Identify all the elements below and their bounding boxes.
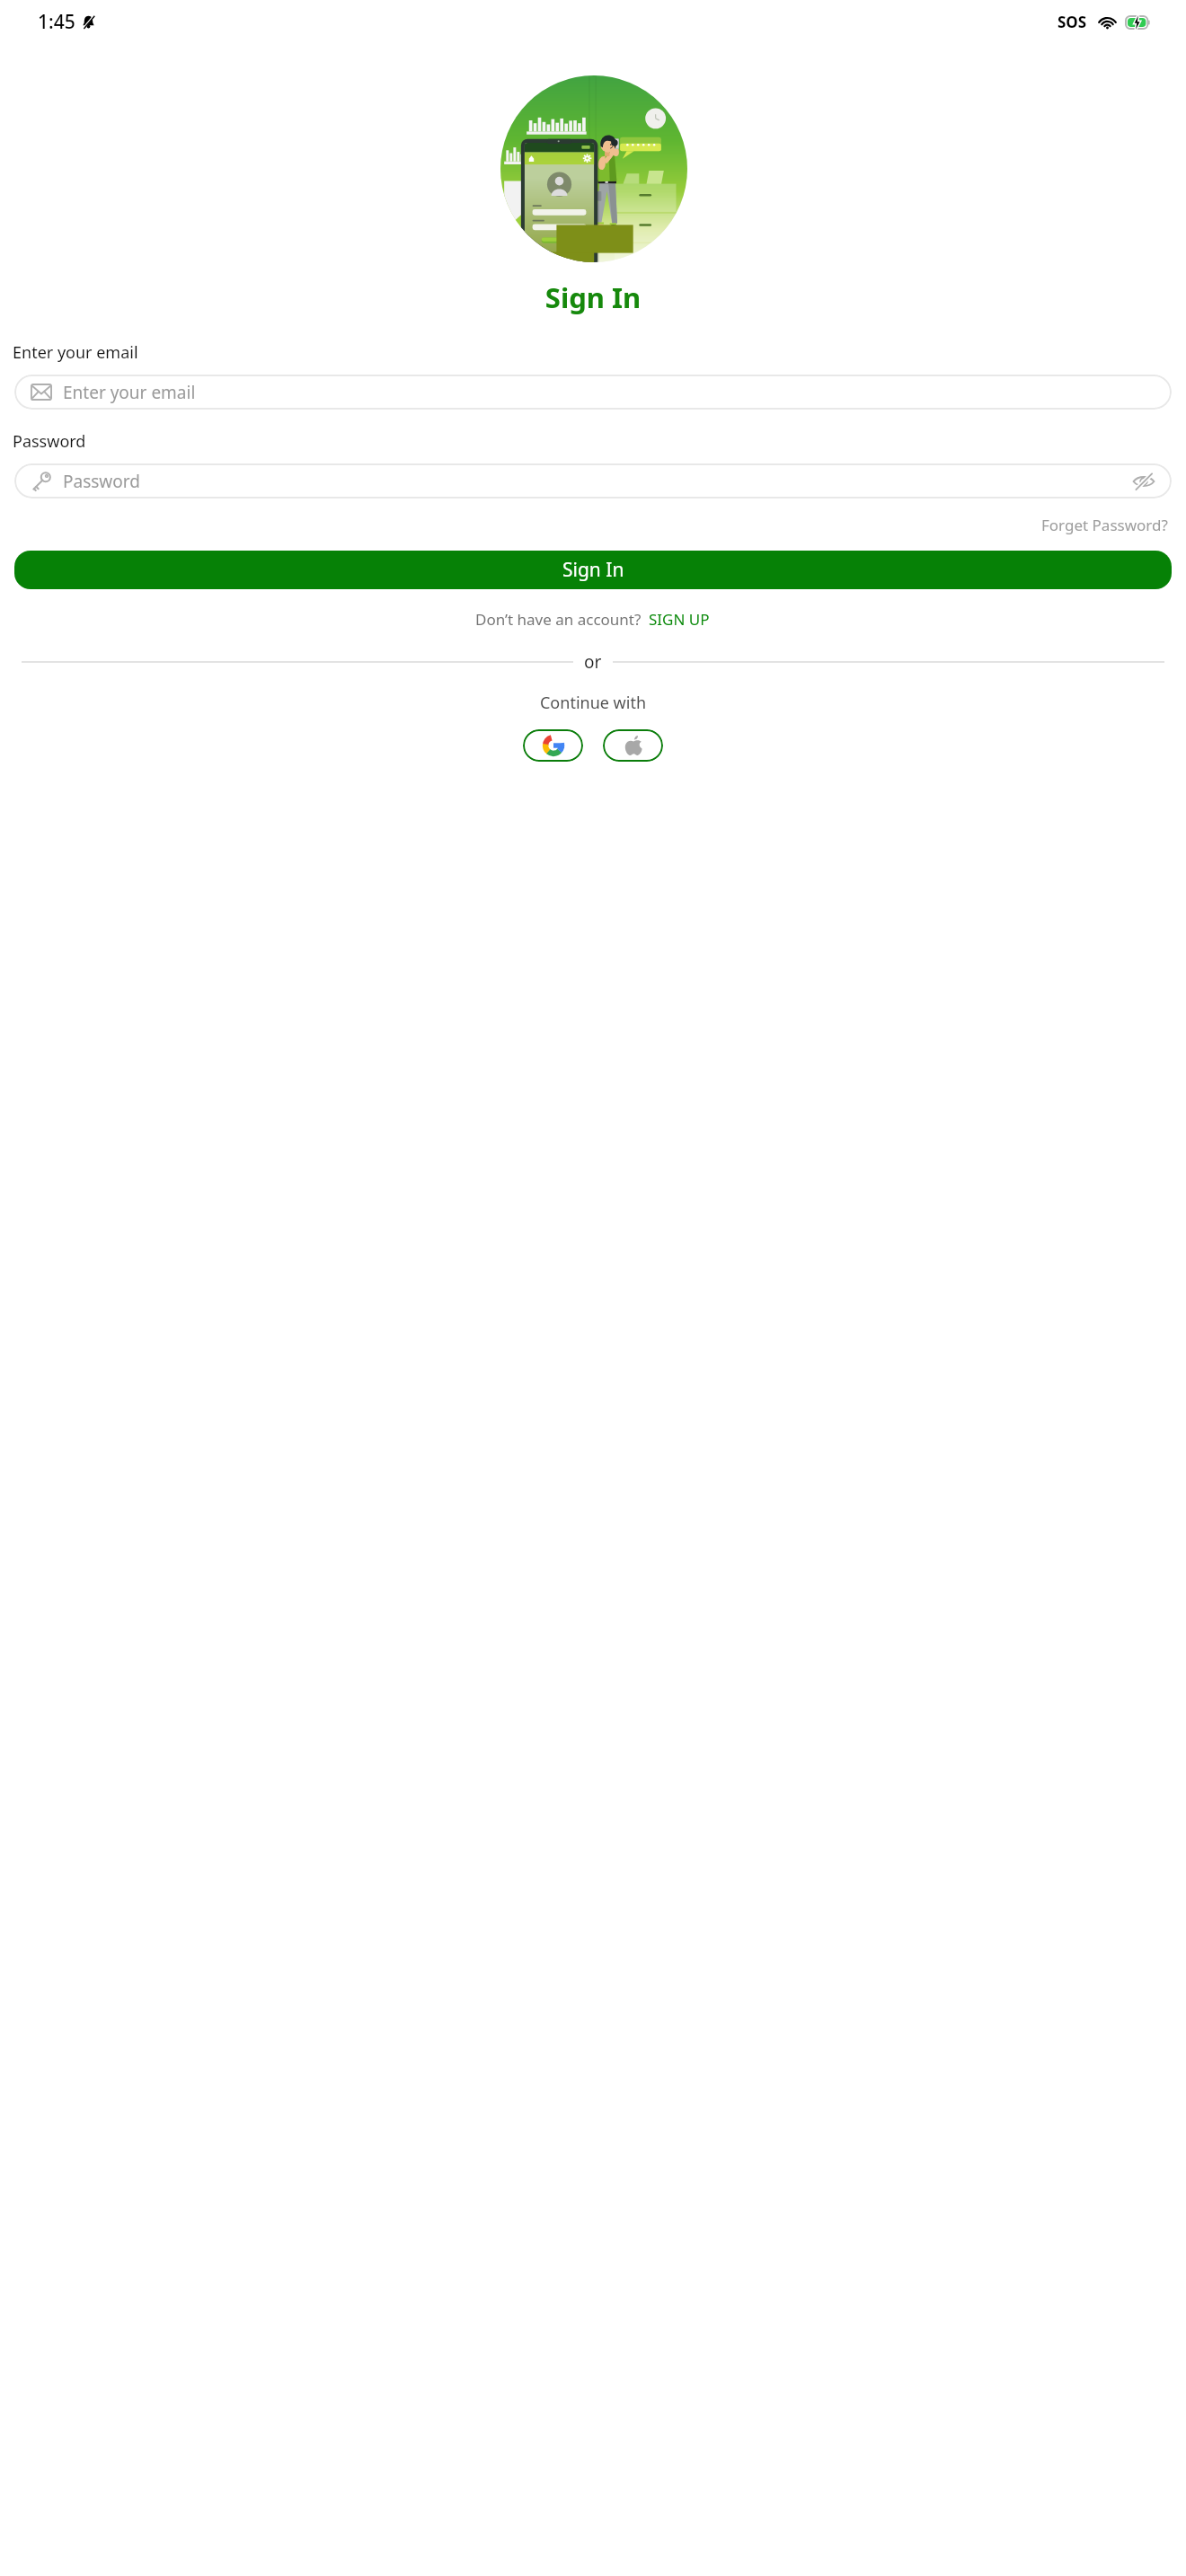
button[interactable]: Continue with Apple bbox=[603, 729, 663, 762]
staticText: SIGN UP bbox=[649, 609, 710, 630]
staticText: 1:45 bbox=[38, 9, 75, 35]
staticText: Continue with bbox=[0, 692, 1186, 714]
button[interactable]: Show password bbox=[1130, 468, 1157, 495]
staticText: Forget Password? bbox=[1041, 515, 1168, 535]
staticText: Password bbox=[63, 470, 1130, 493]
button[interactable]: Forget Password? bbox=[1038, 511, 1172, 539]
staticText: Sign In bbox=[562, 557, 624, 583]
staticText: Enter your email bbox=[13, 341, 138, 364]
button[interactable]: Password bbox=[14, 463, 1172, 498]
staticText: Don’t have an account? bbox=[475, 609, 642, 630]
staticText: Sign In bbox=[0, 278, 1186, 316]
button[interactable]: SIGN UP bbox=[647, 606, 712, 632]
staticText: SOS bbox=[1058, 12, 1087, 32]
staticText: or bbox=[584, 650, 602, 674]
staticText: Enter your email bbox=[63, 381, 1157, 404]
staticText: Password bbox=[13, 430, 86, 453]
button[interactable]: Continue with Google bbox=[523, 729, 583, 762]
button[interactable]: Enter your email bbox=[14, 375, 1172, 410]
button[interactable]: Sign In bbox=[14, 551, 1172, 589]
